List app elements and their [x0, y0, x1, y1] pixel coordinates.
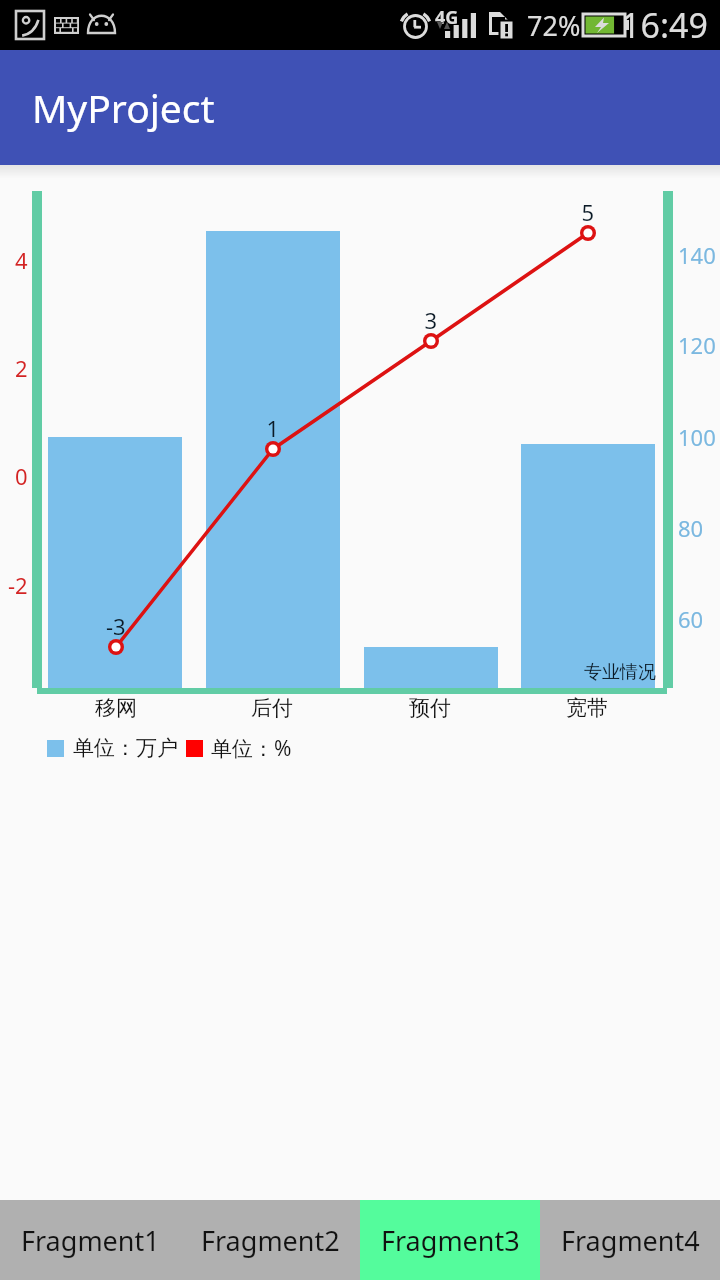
staticText: Fragment3: [381, 1222, 520, 1259]
staticText: MyProject: [32, 81, 215, 134]
button[interactable]: Fragment4: [540, 1200, 720, 1280]
button[interactable]: Fragment3: [360, 1200, 540, 1280]
other: Status bar: 4G signal, 72% battery charg…: [0, 0, 720, 50]
staticText: Fragment4: [561, 1222, 700, 1259]
button[interactable]: Fragment1: [0, 1200, 180, 1280]
staticText: Fragment1: [21, 1222, 160, 1259]
staticText: Fragment2: [201, 1222, 340, 1259]
button[interactable]: Fragment2: [180, 1200, 360, 1280]
